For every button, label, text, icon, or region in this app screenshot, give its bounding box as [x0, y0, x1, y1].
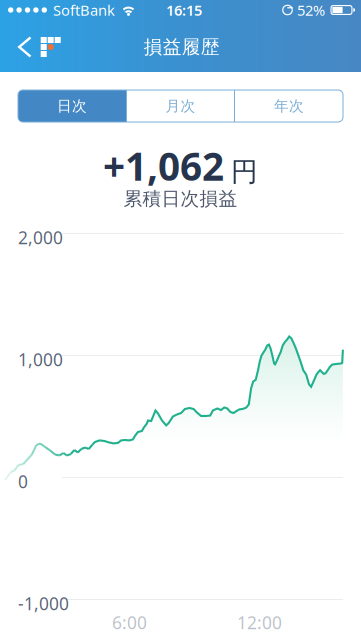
button[interactable]: 年次 [235, 90, 343, 122]
button[interactable]: 日次 [18, 90, 126, 122]
staticText: 0 [18, 470, 28, 493]
staticText: 1,000 [18, 348, 63, 371]
button[interactable]: Back [0, 25, 71, 69]
staticText: -1,000 [18, 592, 69, 615]
staticText: 年次 [274, 97, 304, 115]
staticText: 円 [231, 155, 258, 188]
staticText: 12:00 [237, 611, 282, 634]
staticText: 月次 [165, 97, 195, 115]
staticText: 損益履歴 [144, 35, 220, 58]
staticText: SoftBank [53, 0, 115, 20]
staticText: 2,000 [18, 226, 63, 249]
staticText: 累積日次損益 [123, 187, 237, 210]
staticText: 52% [297, 0, 325, 20]
staticText: 6:00 [112, 611, 147, 634]
staticText: 日次 [57, 97, 87, 115]
button[interactable]: 月次 [127, 90, 234, 122]
staticText: +1,062 [103, 140, 224, 191]
staticText: 16:15 [166, 0, 202, 20]
